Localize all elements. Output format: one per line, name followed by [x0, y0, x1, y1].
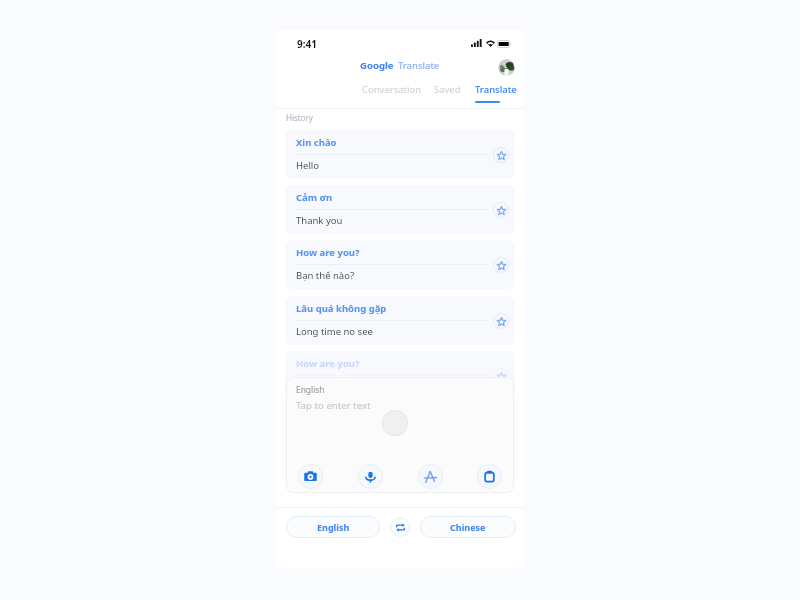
- staticText: How are you?: [296, 246, 360, 259]
- button[interactable]: Lâu quá không gặp: [285, 296, 515, 345]
- button[interactable]: Paste from clipboard: [477, 464, 502, 489]
- staticText: Bạn thế nào?: [296, 380, 355, 393]
- button[interactable]: Save to favorites: [493, 368, 509, 384]
- staticText: English: [317, 521, 350, 533]
- staticText: How are you?: [296, 357, 360, 370]
- staticText: Google: [360, 59, 394, 72]
- button[interactable]: Save to favorites: [493, 313, 509, 329]
- button[interactable]: Conversation: [361, 81, 423, 98]
- button[interactable]: Save to favorites: [493, 147, 509, 163]
- staticText: Long time no see: [296, 325, 373, 338]
- staticText: English: [296, 384, 325, 395]
- staticText: Hello: [296, 159, 320, 172]
- button[interactable]: How are you?: [285, 240, 515, 289]
- button[interactable]: Voice input: [358, 464, 383, 489]
- staticText: Saved: [434, 83, 461, 96]
- staticText: Conversation: [362, 83, 422, 96]
- staticText: Chinese: [450, 521, 486, 533]
- staticText: 9:41: [297, 37, 317, 51]
- staticText: Thank you: [296, 214, 343, 227]
- button[interactable]: Translate with camera: [298, 464, 323, 489]
- button[interactable]: Save to favorites: [493, 257, 509, 273]
- button[interactable]: Saved: [433, 81, 462, 98]
- staticText: History: [286, 112, 313, 123]
- button[interactable]: Swap languages: [390, 517, 410, 537]
- staticText: Translate: [475, 83, 517, 96]
- button[interactable]: Account profile: [498, 59, 515, 76]
- staticText: Xin chào: [296, 136, 337, 149]
- staticText: Cảm ơn: [296, 191, 333, 204]
- button[interactable]: Chinese: [420, 516, 516, 538]
- button[interactable]: Save to favorites: [493, 202, 509, 218]
- button[interactable]: How are you?: [285, 351, 515, 400]
- button[interactable]: Translate: [474, 81, 518, 105]
- button[interactable]: English: [286, 516, 380, 538]
- staticText: Bạn thế nào?: [296, 269, 355, 282]
- staticText: Translate: [398, 59, 440, 72]
- staticText: Lâu quá không gặp: [296, 302, 387, 315]
- button[interactable]: Cảm ơn: [285, 185, 515, 234]
- button[interactable]: Handwriting input: [418, 464, 443, 489]
- staticText: Tap to enter text: [296, 399, 371, 412]
- button[interactable]: Xin chào: [285, 130, 515, 179]
